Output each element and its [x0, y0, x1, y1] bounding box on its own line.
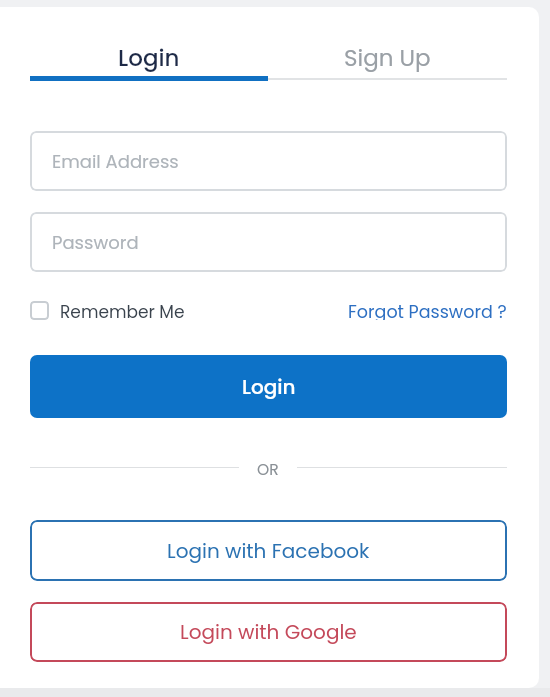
button[interactable]: Password [30, 212, 507, 272]
staticText: Login with Facebook [167, 537, 370, 565]
staticText: Email Address [52, 149, 179, 174]
staticText: Remember Me [60, 300, 185, 320]
button[interactable]: Sign Up [268, 40, 507, 76]
staticText: Sign Up [344, 42, 431, 74]
staticText: Login with Google [180, 618, 357, 646]
button[interactable]: Email Address [30, 131, 507, 191]
button[interactable]: Login [30, 40, 268, 76]
button[interactable]: Login with Google [30, 602, 507, 662]
staticText: Login [118, 42, 180, 74]
button[interactable] [30, 301, 49, 320]
button[interactable]: Login [30, 355, 507, 418]
staticText: Password [52, 230, 139, 255]
staticText: Login [242, 373, 296, 401]
staticText: Forgot Password ? [348, 300, 507, 320]
button[interactable]: Login with Facebook [30, 520, 507, 581]
button[interactable]: Forgot Password ? [348, 300, 507, 320]
staticText: OR [257, 459, 279, 475]
